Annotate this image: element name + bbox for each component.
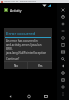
button[interactable]: No bbox=[4, 62, 27, 69]
staticText: and.activity.errors (java.lan bbox=[6, 43, 42, 47]
button[interactable]: Volume down bbox=[57, 27, 69, 34]
button[interactable]: Overview bbox=[57, 76, 69, 83]
staticText: No bbox=[14, 64, 18, 68]
staticText: Activity bbox=[10, 8, 22, 13]
button[interactable]: Rotate left bbox=[57, 34, 69, 41]
button[interactable]: Rotate right bbox=[57, 41, 69, 48]
button[interactable]: Recent apps bbox=[39, 90, 53, 100]
staticText: ERR). bbox=[6, 47, 13, 51]
button[interactable]: More bbox=[57, 90, 69, 97]
staticText: Yes bbox=[38, 64, 43, 68]
staticText: Nexus 5 API 23 - android emulator bbox=[4, 0, 37, 3]
staticText: An error has occurred in bbox=[6, 39, 38, 43]
staticText: Error occurred bbox=[6, 30, 36, 36]
staticText: Continue? bbox=[6, 57, 20, 61]
button[interactable]: Volume up bbox=[57, 20, 69, 27]
button[interactable]: Back bbox=[4, 90, 18, 100]
button[interactable]: Zoom bbox=[57, 55, 69, 62]
button[interactable]: Location bbox=[57, 83, 69, 90]
button[interactable]: Yes bbox=[28, 62, 52, 69]
button[interactable]: Power bbox=[57, 13, 69, 20]
staticText: java.lang.NullPointerException bbox=[6, 51, 47, 55]
button[interactable]: Close bbox=[57, 6, 69, 13]
button[interactable]: Back bbox=[57, 62, 69, 69]
button[interactable]: Home bbox=[57, 69, 69, 76]
button[interactable]: Screenshot bbox=[57, 48, 69, 55]
button[interactable]: Home bbox=[22, 90, 36, 100]
